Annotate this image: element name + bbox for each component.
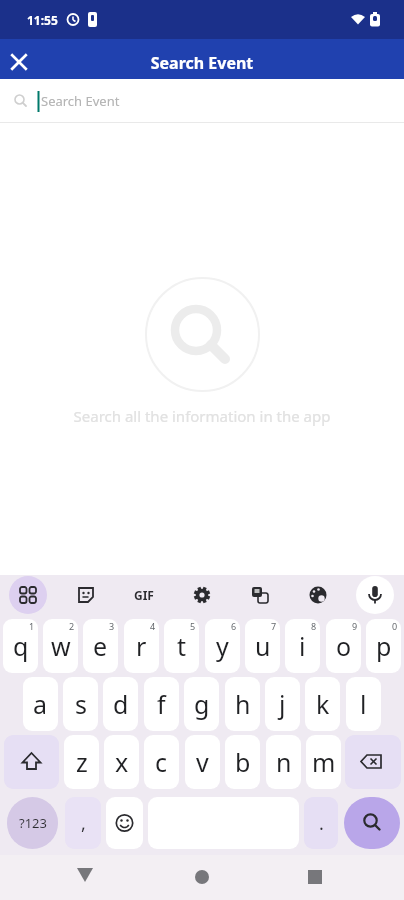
staticText: m — [312, 745, 336, 779]
button[interactable]: u — [245, 619, 280, 673]
button[interactable] — [344, 797, 400, 849]
staticText: x — [115, 745, 129, 779]
staticText: 8 — [311, 620, 317, 632]
button[interactable] — [299, 576, 337, 614]
staticText: f — [157, 687, 166, 721]
staticText: 2 — [69, 620, 75, 632]
button[interactable]: t — [164, 619, 199, 673]
button[interactable]: b — [225, 735, 260, 789]
staticText: j — [279, 687, 286, 721]
staticText: 5 — [190, 620, 196, 632]
staticText: k — [316, 687, 330, 721]
staticText: 4 — [150, 620, 156, 632]
staticText: 1 — [29, 620, 35, 632]
button[interactable]: GIF — [125, 576, 163, 614]
staticText: n — [276, 745, 292, 779]
button[interactable]: p — [366, 619, 401, 673]
button[interactable]: c — [144, 735, 179, 789]
staticText: 11:55 — [27, 12, 58, 28]
button[interactable] — [6, 45, 34, 73]
button[interactable] — [60, 860, 110, 896]
staticText: o — [336, 629, 352, 663]
button[interactable] — [106, 797, 143, 849]
button[interactable]: x — [104, 735, 139, 789]
button[interactable]: f — [144, 677, 179, 731]
staticText: 6 — [231, 620, 237, 632]
staticText: d — [113, 687, 129, 721]
staticText: t — [177, 629, 187, 663]
button[interactable]: o — [326, 619, 361, 673]
button[interactable] — [9, 576, 47, 614]
button[interactable]: i — [285, 619, 320, 673]
staticText: 9 — [352, 620, 358, 632]
staticText: z — [76, 745, 88, 779]
staticText: i — [299, 629, 306, 663]
staticText: y — [216, 629, 229, 663]
button[interactable]: . — [304, 797, 338, 849]
staticText: v — [196, 745, 209, 779]
button[interactable]: d — [103, 677, 138, 731]
button[interactable]: l — [346, 677, 381, 731]
staticText: s — [75, 687, 87, 721]
button[interactable] — [4, 735, 59, 789]
staticText: r — [136, 629, 147, 663]
button[interactable] — [290, 860, 340, 896]
button[interactable] — [67, 576, 105, 614]
staticText: Search Event — [0, 52, 404, 74]
button[interactable] — [356, 576, 394, 614]
staticText: , — [81, 811, 86, 836]
button[interactable]: k — [305, 677, 340, 731]
button[interactable]: g — [184, 677, 219, 731]
button[interactable]: q — [3, 619, 38, 673]
button[interactable]: y — [205, 619, 240, 673]
button[interactable]: w — [43, 619, 78, 673]
button[interactable] — [0, 79, 404, 122]
button[interactable]: a — [23, 677, 58, 731]
button[interactable]: s — [63, 677, 98, 731]
staticText: p — [376, 629, 392, 663]
button[interactable]: , — [65, 797, 101, 849]
button[interactable]: j — [265, 677, 300, 731]
staticText: e — [93, 629, 108, 663]
button[interactable]: h — [225, 677, 260, 731]
button[interactable] — [177, 860, 227, 896]
button[interactable]: m — [306, 735, 341, 789]
button[interactable]: v — [185, 735, 220, 789]
staticText: l — [360, 687, 367, 721]
button[interactable] — [241, 576, 279, 614]
staticText: 0 — [392, 620, 398, 632]
staticText: a — [33, 687, 48, 721]
staticText: . — [319, 811, 324, 836]
staticText: c — [155, 745, 168, 779]
staticText: ?123 — [19, 814, 47, 832]
staticText: 3 — [109, 620, 115, 632]
button[interactable] — [345, 735, 401, 789]
staticText: g — [194, 687, 210, 721]
staticText: GIF — [134, 587, 154, 603]
staticText: u — [255, 629, 271, 663]
staticText: h — [235, 687, 251, 721]
staticText: Search all the information in the app — [0, 406, 404, 426]
staticText: Search Event — [41, 92, 120, 110]
staticText: q — [13, 629, 29, 663]
staticText: b — [235, 745, 251, 779]
button[interactable]: z — [64, 735, 99, 789]
button[interactable] — [183, 576, 221, 614]
staticText: w — [51, 629, 71, 663]
button[interactable]: r — [124, 619, 159, 673]
button[interactable]: n — [266, 735, 301, 789]
staticText: 7 — [271, 620, 277, 632]
button[interactable]: ?123 — [7, 797, 58, 849]
button[interactable]: e — [83, 619, 118, 673]
